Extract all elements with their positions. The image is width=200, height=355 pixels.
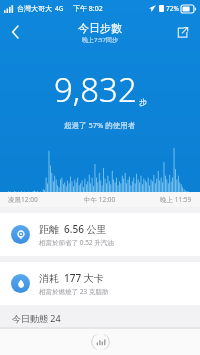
button[interactable]: 消耗 [0, 262, 200, 305]
staticText: 相當於燃燒了 23 克脂肪 [39, 287, 109, 296]
staticText: 相當於節省了 0.52 升汽油 [39, 238, 114, 247]
staticText: 超過了 57% 的使用者 [64, 120, 136, 130]
staticText: 距離 [39, 223, 59, 236]
staticText: 今日動態 24 [12, 312, 61, 324]
staticText: 9,832 [54, 67, 137, 112]
staticText: 晚上7:57同步 [82, 36, 118, 44]
staticText: 72% [166, 4, 179, 13]
staticText: 下午 8:02 [73, 4, 103, 14]
staticText: 消耗 [39, 272, 59, 285]
button[interactable]: 距離 [0, 213, 200, 256]
staticText: 步 [139, 97, 147, 107]
staticText: 今日步數 [78, 21, 122, 35]
staticText: 中午 12:00 [84, 195, 116, 204]
staticText: 凌晨12:00 [8, 195, 38, 204]
button[interactable]: Back [0, 17, 30, 47]
staticText: 4G [55, 4, 64, 13]
staticText: 6.56 公里 [64, 222, 107, 236]
staticText: 177 大卡 [64, 271, 104, 285]
button[interactable]: 統計 [0, 329, 200, 355]
staticText: 台灣大哥大 [17, 4, 52, 13]
staticText: 晚上 11:59 [160, 195, 192, 204]
button[interactable]: Share [168, 18, 196, 46]
